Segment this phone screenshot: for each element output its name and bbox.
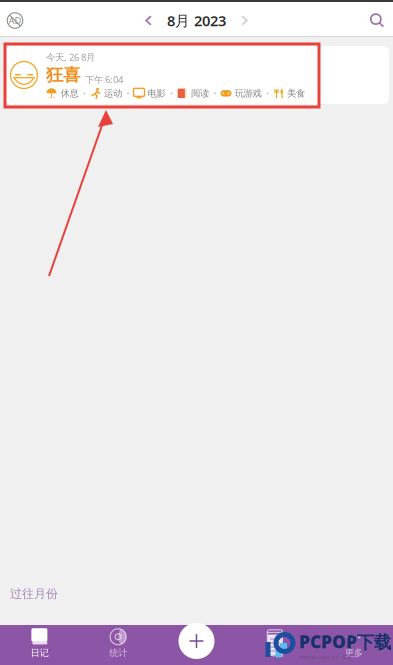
button[interactable]: New entry (176, 621, 216, 661)
staticText: 美食 (287, 88, 305, 99)
staticText: 电影 (147, 88, 165, 99)
staticText: 下午 6:04 (85, 73, 123, 86)
staticText: 日历 (266, 647, 284, 659)
staticText: 阅读 (191, 88, 209, 99)
staticText: 狂喜 (46, 64, 80, 86)
button[interactable]: 今天, 26 8月 (4, 46, 389, 104)
button[interactable]: 日记 (0, 625, 79, 665)
staticText: 8月 2023 (167, 11, 226, 30)
button[interactable]: 更多 (314, 625, 393, 665)
button[interactable]: Search (353, 0, 393, 37)
staticText: www.pcpop.com 更多 (299, 653, 352, 660)
staticText: 运动 (104, 88, 122, 99)
staticText: 过往月份 (10, 586, 58, 601)
staticText: 更多 (345, 647, 363, 659)
staticText: 玩游戏 (234, 88, 261, 99)
staticText: 休息 (60, 88, 78, 99)
button[interactable]: 统计 (79, 625, 158, 665)
button[interactable]: 日历 (235, 625, 314, 665)
button[interactable]: Previous month (136, 5, 160, 35)
button[interactable]: Next month (232, 5, 256, 35)
staticText: AD (8, 14, 21, 27)
staticText: 今天, 26 8月 (46, 51, 95, 63)
staticText: PCPOP下载 (299, 630, 391, 653)
staticText: 日记 (30, 647, 48, 659)
staticText: 统计 (109, 647, 127, 659)
button[interactable]: Remove ads (0, 0, 40, 37)
